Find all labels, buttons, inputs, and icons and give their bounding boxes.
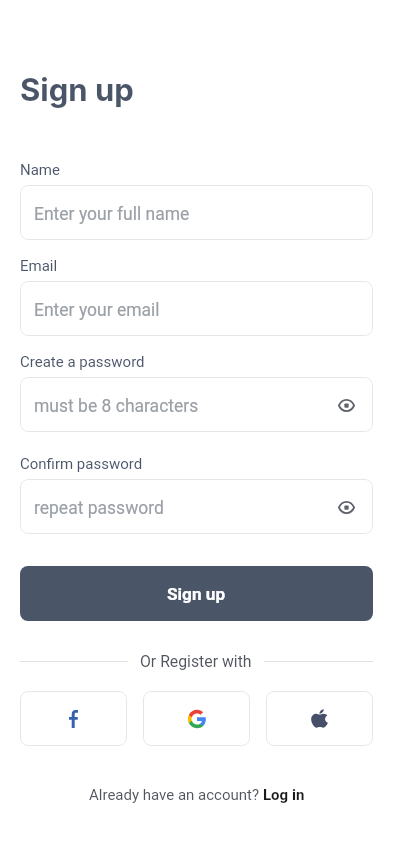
staticText: repeat password — [34, 498, 164, 519]
staticText: Name — [20, 161, 60, 179]
staticText: Enter your email — [34, 300, 160, 321]
button[interactable]: Show password — [333, 494, 359, 520]
button[interactable]: Show password — [333, 392, 359, 418]
button[interactable]: Enter your full name — [20, 185, 373, 240]
staticText: Confirm password — [20, 455, 143, 473]
button[interactable]: Sign up — [20, 566, 373, 621]
button[interactable]: Log in — [263, 786, 305, 804]
staticText: Email — [20, 257, 58, 275]
button[interactable]: Sign up with Facebook — [20, 691, 127, 746]
button[interactable]: repeat password — [20, 479, 373, 534]
staticText: Create a password — [20, 353, 145, 371]
staticText: Already have an account? — [89, 786, 263, 804]
staticText: Sign up — [20, 71, 134, 109]
staticText: Or Register with — [140, 652, 252, 671]
button[interactable]: Sign up with Google — [143, 691, 250, 746]
staticText: Enter your full name — [34, 204, 190, 225]
staticText: must be 8 characters — [34, 396, 199, 417]
button[interactable]: Enter your email — [20, 281, 373, 336]
staticText: Sign up — [167, 584, 226, 604]
button[interactable]: Sign up with Apple — [266, 691, 373, 746]
button[interactable]: must be 8 characters — [20, 377, 373, 432]
